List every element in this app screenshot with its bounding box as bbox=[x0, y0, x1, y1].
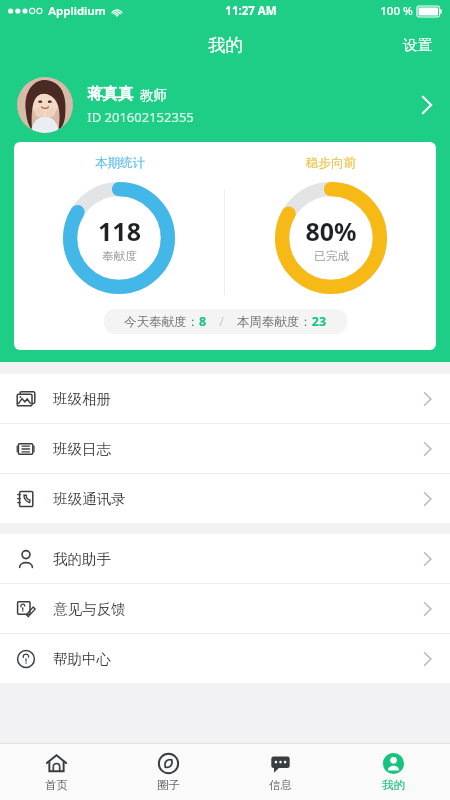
staticText: 班级通讯录 bbox=[53, 490, 126, 508]
button[interactable]: 班级日志 bbox=[0, 424, 450, 473]
button[interactable]: 我的助手 bbox=[0, 534, 450, 583]
staticText: 我的助手 bbox=[53, 550, 111, 568]
staticText: 我的 bbox=[208, 34, 243, 56]
staticText: 圈子 bbox=[157, 778, 180, 792]
staticText: 信息 bbox=[269, 778, 292, 792]
button[interactable]: 帮助中心 bbox=[0, 634, 450, 683]
staticText: 11:27 AM bbox=[225, 3, 277, 19]
staticText: 设置 bbox=[403, 36, 432, 54]
button[interactable]: 意见与反馈 bbox=[0, 584, 450, 633]
staticText: 80% bbox=[305, 214, 357, 248]
button[interactable]: 班级相册 bbox=[0, 374, 450, 423]
staticText: 班级相册 bbox=[53, 390, 111, 408]
staticText: 已完成 bbox=[314, 249, 349, 263]
staticText: 意见与反馈 bbox=[53, 600, 126, 618]
staticText: 今天奉献度：8 / 本周奉献度：23 bbox=[124, 313, 327, 330]
staticText: 118 bbox=[98, 214, 141, 248]
staticText: 蒋真真 bbox=[87, 84, 134, 104]
staticText: 帮助中心 bbox=[53, 650, 111, 668]
staticText: 我的 bbox=[382, 778, 405, 792]
button[interactable]: 蒋真真 bbox=[0, 68, 450, 142]
staticText: 首页 bbox=[45, 778, 68, 792]
staticText: 班级日志 bbox=[53, 440, 111, 458]
button[interactable]: 班级通讯录 bbox=[0, 474, 450, 523]
button[interactable]: 圈子 bbox=[112, 744, 224, 800]
staticText: 稳步向前 bbox=[306, 155, 356, 171]
staticText: 教师 bbox=[140, 87, 167, 104]
staticText: Applidium bbox=[48, 3, 106, 19]
staticText: ID 201602152355 bbox=[87, 108, 194, 126]
button[interactable]: 首页 bbox=[0, 744, 112, 800]
staticText: 奉献度 bbox=[102, 249, 137, 263]
button[interactable]: 信息 bbox=[224, 744, 337, 800]
button[interactable]: 设置 bbox=[385, 26, 450, 64]
button[interactable]: 我的 bbox=[337, 744, 450, 800]
staticText: 本期统计 bbox=[95, 155, 145, 171]
staticText: 100 % bbox=[380, 3, 413, 19]
